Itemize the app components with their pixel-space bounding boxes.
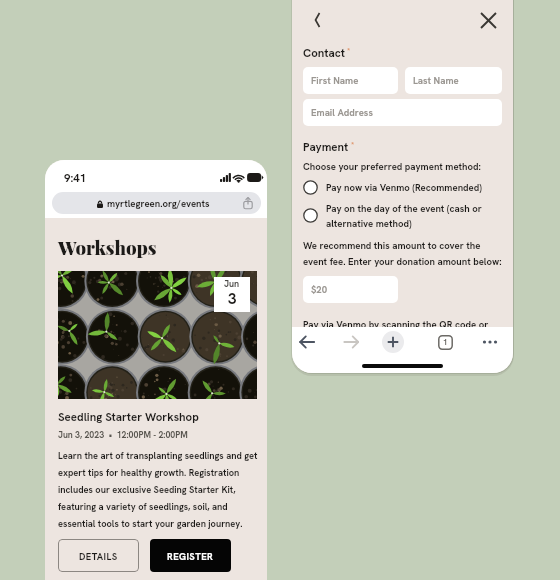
button[interactable]: First Name bbox=[303, 67, 398, 94]
button[interactable]: Pay on the day of the event (cash or alt… bbox=[303, 202, 502, 229]
staticText: Jun bbox=[224, 278, 240, 290]
staticText: 1 bbox=[443, 337, 448, 347]
staticText: myrtlegreen.org/events bbox=[107, 197, 210, 210]
staticText: REGISTER bbox=[167, 550, 214, 562]
staticText: * bbox=[345, 46, 351, 56]
button[interactable]: Back bbox=[303, 6, 331, 34]
staticText: DETAILS bbox=[79, 550, 118, 562]
staticText: $20 bbox=[311, 283, 328, 296]
button[interactable]: $20 bbox=[303, 276, 398, 303]
button[interactable]: Back bbox=[295, 330, 319, 354]
staticText: Last Name bbox=[413, 74, 459, 87]
staticText: Choose your preferred payment method: bbox=[303, 160, 481, 173]
staticText: 3 bbox=[228, 289, 237, 309]
button[interactable]: REGISTER bbox=[150, 539, 231, 572]
staticText: Pay now via Venmo (Recommended) bbox=[326, 181, 482, 194]
button[interactable]: Forward bbox=[339, 330, 363, 354]
staticText: Learn the art of transplanting seedlings… bbox=[58, 450, 261, 530]
staticText: Pay on the day of the event (cash or alt… bbox=[326, 202, 502, 229]
staticText: Contact bbox=[303, 45, 345, 60]
button[interactable]: Last Name bbox=[405, 67, 502, 94]
other: Share bbox=[243, 197, 253, 209]
staticText: We recommend this amount to cover the ev… bbox=[303, 239, 502, 267]
staticText: First Name bbox=[311, 74, 359, 87]
staticText: * bbox=[349, 140, 355, 150]
staticText: Payment bbox=[303, 139, 349, 154]
button[interactable]: More options bbox=[478, 330, 502, 354]
staticText: 9:41 bbox=[64, 170, 87, 185]
staticText: Jun 3, 2023 • 12:00PM - 2:00PM bbox=[58, 429, 188, 440]
button[interactable]: DETAILS bbox=[58, 539, 139, 572]
staticText: Seedling Starter Workshop bbox=[58, 409, 199, 424]
staticText: Workshops bbox=[58, 235, 157, 260]
button[interactable]: Close bbox=[474, 6, 502, 34]
staticText: Pay via Venmo by scanning the QR code or bbox=[303, 318, 489, 331]
button[interactable]: Email Address bbox=[303, 99, 502, 126]
staticText: Email Address bbox=[311, 106, 373, 119]
button[interactable]: Tabs: 1 open bbox=[433, 330, 457, 354]
button[interactable]: New tab bbox=[382, 331, 404, 353]
button[interactable]: Pay now via Venmo (Recommended) bbox=[303, 180, 502, 195]
button[interactable]: myrtlegreen.org/events bbox=[52, 192, 261, 214]
